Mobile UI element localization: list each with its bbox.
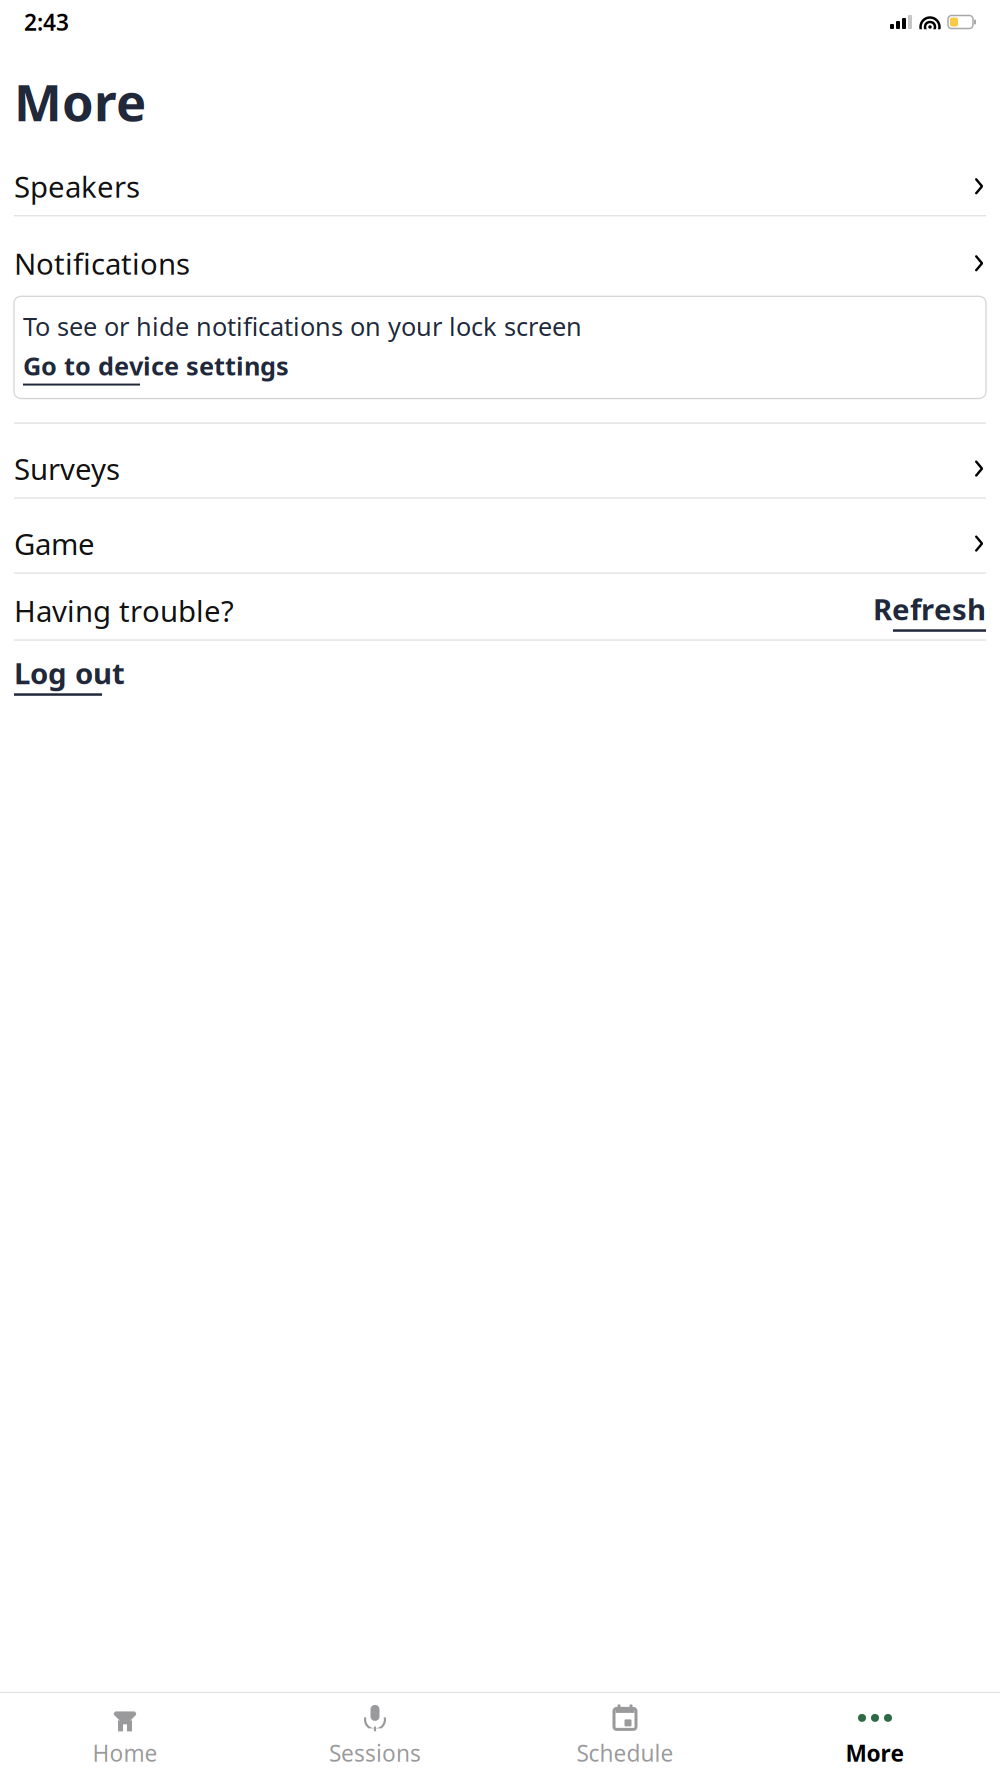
staticText: Home: [92, 1738, 157, 1768]
staticText: Game: [14, 524, 95, 563]
button[interactable]: Sessions: [250, 1693, 500, 1778]
staticText: Log out: [14, 653, 125, 692]
staticText: Notifications: [14, 244, 190, 283]
button[interactable]: Surveys: [0, 440, 1000, 498]
button[interactable]: Game: [0, 515, 1000, 573]
button[interactable]: Schedule: [500, 1693, 750, 1778]
staticText: Speakers: [14, 167, 140, 206]
staticText: Refresh: [873, 589, 986, 628]
staticText: More: [14, 68, 146, 135]
staticText: Having trouble?: [14, 591, 234, 630]
staticText: Schedule: [576, 1738, 673, 1768]
button[interactable]: Speakers: [0, 157, 1000, 215]
button[interactable]: Notifications: [0, 234, 1000, 292]
button[interactable]: Log out: [14, 643, 125, 706]
staticText: More: [845, 1738, 904, 1768]
button[interactable]: More: [750, 1693, 1000, 1778]
button[interactable]: Home: [0, 1693, 250, 1778]
staticText: To see or hide notifications on your loc…: [23, 309, 582, 343]
staticText: Sessions: [329, 1738, 421, 1768]
staticText: 2:43: [24, 7, 69, 37]
button[interactable]: Go to device settings: [23, 349, 289, 385]
staticText: Surveys: [14, 449, 120, 488]
button[interactable]: Refresh: [873, 581, 986, 640]
staticText: Go to device settings: [23, 349, 289, 382]
